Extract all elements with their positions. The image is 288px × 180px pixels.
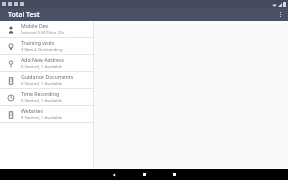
staticText: 3 New 4 Outstanding: [21, 47, 63, 53]
button[interactable]: More options: [272, 8, 288, 21]
staticText: Time Recording: [21, 90, 60, 97]
button[interactable]: Websites: [0, 106, 93, 123]
button[interactable]: Add New Address: [0, 55, 93, 72]
button[interactable]: Recent apps: [163, 169, 185, 180]
button[interactable]: Back: [103, 169, 125, 180]
staticText: 0 Started, 1 Available: [21, 81, 63, 87]
staticText: Total Test: [8, 10, 40, 20]
button[interactable]: Guidance Documents: [0, 72, 93, 89]
staticText: Training visits: [21, 39, 55, 46]
staticText: Guidance Documents: [21, 73, 74, 80]
staticText: Internal 5 M Phito 23s: [21, 30, 65, 36]
staticText: Websites: [21, 107, 43, 114]
staticText: 0 Started, 1 Available: [21, 64, 63, 70]
button[interactable]: Home: [133, 169, 155, 180]
staticText: Mobile Dev: [21, 22, 49, 29]
button[interactable]: Training visits: [0, 38, 93, 55]
button[interactable]: Time Recording: [0, 89, 93, 106]
button[interactable]: Mobile Dev: [0, 21, 93, 38]
staticText: Add New Address: [21, 56, 64, 63]
staticText: 0 Started, 1 Available: [21, 98, 63, 104]
staticText: 0 Started, 1 Available: [21, 115, 63, 121]
